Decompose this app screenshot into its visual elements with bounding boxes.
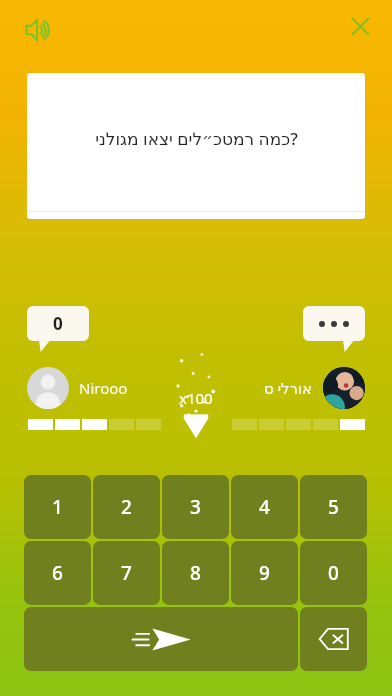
button[interactable]: 5 (300, 475, 367, 539)
button[interactable] (303, 306, 365, 352)
button[interactable]: 2 (93, 475, 160, 539)
button[interactable]: 0 (300, 541, 367, 605)
button[interactable]: 3 (162, 475, 229, 539)
staticText: 6 (52, 560, 63, 586)
button[interactable]: 4 (231, 475, 298, 539)
staticText: Nirooo (79, 378, 128, 398)
staticText: 0 (53, 312, 63, 335)
staticText: 3 (190, 494, 201, 520)
staticText: x100 (179, 388, 213, 408)
button[interactable]: 6 (24, 541, 91, 605)
button[interactable]: Sound (20, 12, 56, 48)
staticText: 8 (190, 560, 201, 586)
staticText: 0 (328, 560, 339, 586)
staticText: כמה רמטכ״לים יצאו מגולני? (95, 127, 298, 150)
button[interactable]: Nirooo (27, 367, 128, 409)
button[interactable]: 1 (24, 475, 91, 539)
button[interactable]: Backspace (300, 607, 367, 671)
button[interactable]: אורלי ס (250, 367, 365, 409)
button[interactable]: 8 (162, 541, 229, 605)
button[interactable]: Send (24, 607, 298, 671)
button[interactable]: Close (342, 8, 378, 44)
staticText: 9 (259, 560, 270, 586)
staticText: 2 (121, 494, 132, 520)
staticText: 4 (259, 494, 270, 520)
button[interactable]: כמה רמטכ״לים יצאו מגולני? (27, 73, 365, 219)
staticText: 1 (52, 494, 63, 520)
button[interactable]: 9 (231, 541, 298, 605)
button[interactable]: 7 (93, 541, 160, 605)
button[interactable]: 0 (27, 306, 89, 352)
staticText: אורלי ס (264, 378, 313, 398)
staticText: 7 (121, 560, 132, 586)
staticText: 5 (328, 494, 339, 520)
